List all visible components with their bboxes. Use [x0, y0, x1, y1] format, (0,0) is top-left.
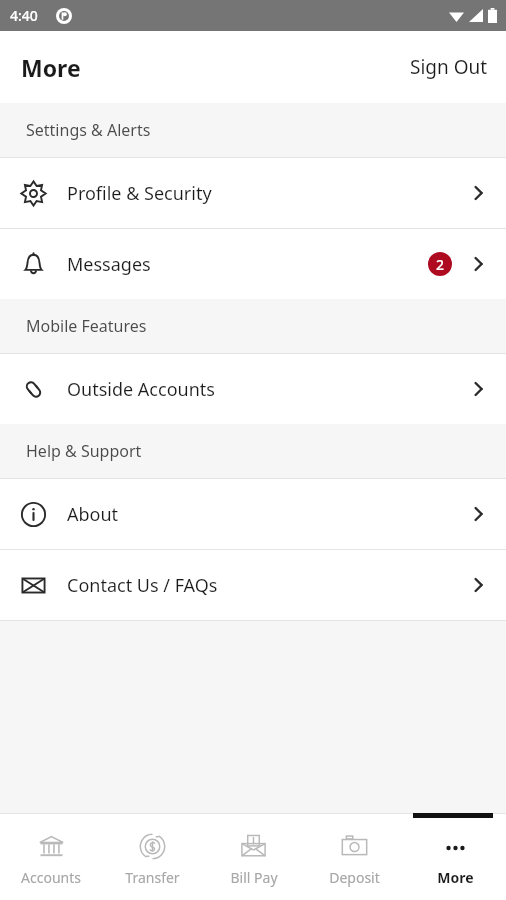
staticText: Transfer	[125, 868, 180, 887]
button[interactable]: Profile & Security	[0, 158, 506, 228]
button[interactable]: More	[405, 818, 506, 900]
staticText: 2	[436, 255, 445, 274]
staticText: Deposit	[329, 868, 380, 887]
button[interactable]: About	[0, 479, 506, 549]
staticText: Help & Support	[26, 440, 142, 462]
staticText: 4:40	[10, 6, 38, 25]
staticText: More	[21, 52, 81, 83]
staticText: More	[437, 868, 474, 887]
button[interactable]: Contact Us / FAQs	[0, 550, 506, 620]
staticText: Bill Pay	[230, 868, 278, 887]
button[interactable]: Deposit	[304, 818, 405, 900]
staticText: Outside Accounts	[67, 377, 468, 402]
staticText: Accounts	[21, 868, 81, 887]
button[interactable]: Transfer	[102, 818, 203, 900]
staticText: Sign Out	[410, 54, 488, 80]
staticText: Profile & Security	[67, 181, 468, 206]
staticText: Settings & Alerts	[26, 119, 151, 141]
button[interactable]: Outside Accounts	[0, 354, 506, 424]
button[interactable]: Bill Pay	[203, 818, 304, 900]
button[interactable]: Accounts	[0, 818, 102, 900]
staticText: Mobile Features	[26, 315, 147, 337]
button[interactable]: Messages	[0, 229, 506, 299]
staticText: Messages	[67, 252, 428, 277]
staticText: About	[67, 502, 468, 527]
button[interactable]: Sign Out	[392, 42, 506, 92]
staticText: Contact Us / FAQs	[67, 573, 468, 598]
